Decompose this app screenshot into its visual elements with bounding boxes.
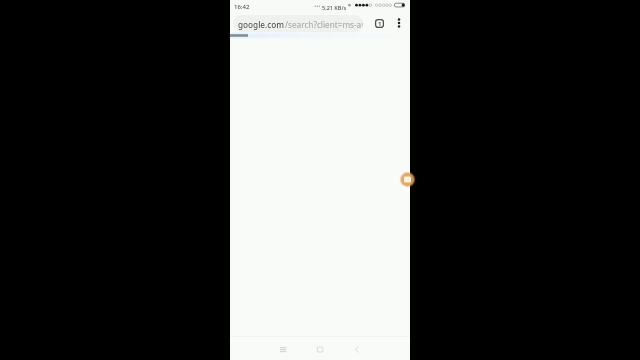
staticText: 1 — [378, 20, 382, 28]
button[interactable]: Switch tabs — [370, 14, 388, 32]
button[interactable]: Back — [345, 338, 365, 358]
staticText: /search?client=ms-an — [285, 19, 363, 30]
staticText: 16:42 — [234, 3, 250, 11]
button[interactable]: Home — [307, 338, 327, 358]
staticText: google.com — [238, 19, 285, 30]
button[interactable]: More options — [391, 15, 407, 31]
button[interactable]: Loading indicator — [399, 171, 416, 188]
button[interactable]: Recent apps — [270, 338, 290, 358]
button[interactable]: google.com — [233, 15, 363, 32]
staticText: 5,21 KB/s — [322, 4, 347, 11]
